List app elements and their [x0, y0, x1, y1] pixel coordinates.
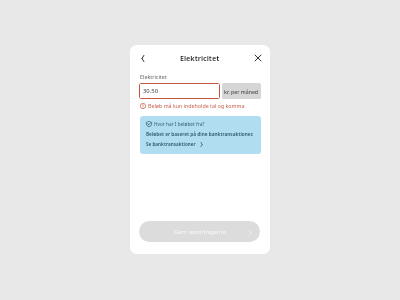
- staticText: Elektricitet: [180, 53, 220, 63]
- button[interactable]: Close: [250, 50, 266, 66]
- staticText: 30.50: [143, 87, 159, 95]
- button[interactable]: Back: [135, 50, 151, 66]
- button[interactable]: 30.50: [139, 83, 220, 99]
- staticText: Gem ændringerne: [174, 228, 226, 236]
- button[interactable]: Gem ændringerne: [139, 221, 260, 242]
- staticText: Hvor har I beløbet fra?: [154, 121, 205, 127]
- button[interactable]: Se banktransaktioner: [146, 141, 203, 147]
- staticText: Se banktransaktioner: [146, 141, 196, 147]
- staticText: Beløbet er baseret på dine banktransakti…: [146, 131, 254, 137]
- staticText: Elektricitet: [140, 73, 167, 80]
- staticText: Beløb må kun indeholde tal og komma: [148, 102, 245, 109]
- staticText: kr. per måned: [224, 88, 259, 95]
